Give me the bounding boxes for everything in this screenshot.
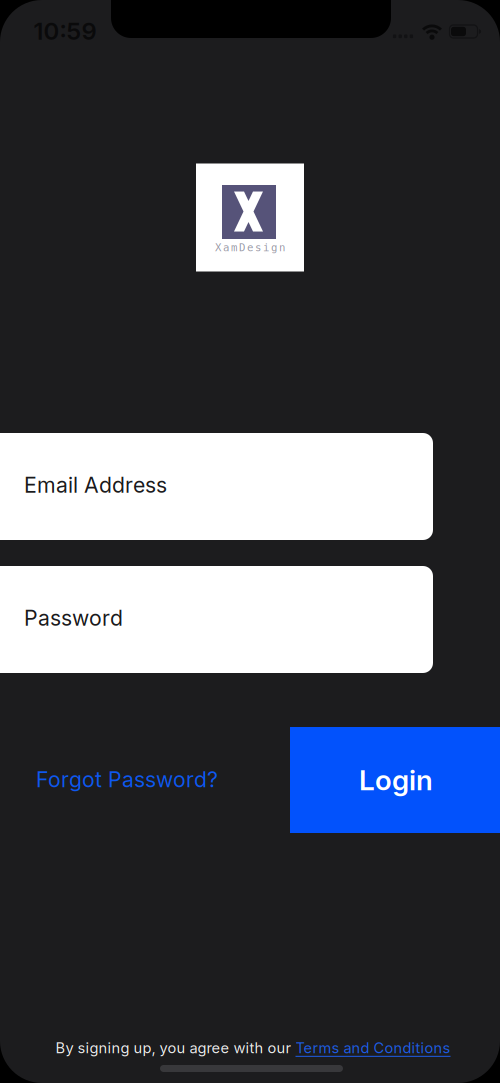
button[interactable]: Email Address [0, 433, 433, 540]
staticText: m [231, 241, 237, 253]
staticText: n [279, 241, 285, 253]
button[interactable]: Password [0, 566, 433, 673]
staticText: D [239, 241, 245, 253]
staticText: X [215, 241, 221, 253]
staticText: Forgot Password? [36, 767, 218, 792]
staticText: Email Address [24, 472, 167, 498]
staticText: e [247, 241, 253, 253]
staticText: 10:59 [33, 17, 96, 45]
button[interactable]: By signing up, you agree with our [55, 1039, 450, 1057]
staticText: g [271, 241, 277, 253]
staticText: s [255, 241, 261, 253]
staticText: a [223, 241, 229, 253]
staticText: Password [24, 605, 123, 631]
staticText: Terms and Conditions [295, 1039, 450, 1057]
staticText: i [263, 241, 269, 253]
button[interactable]: Login [290, 727, 500, 833]
button[interactable]: Forgot Password? [36, 767, 218, 792]
staticText: By signing up, you agree with our [55, 1039, 295, 1057]
staticText: Login [359, 763, 433, 796]
